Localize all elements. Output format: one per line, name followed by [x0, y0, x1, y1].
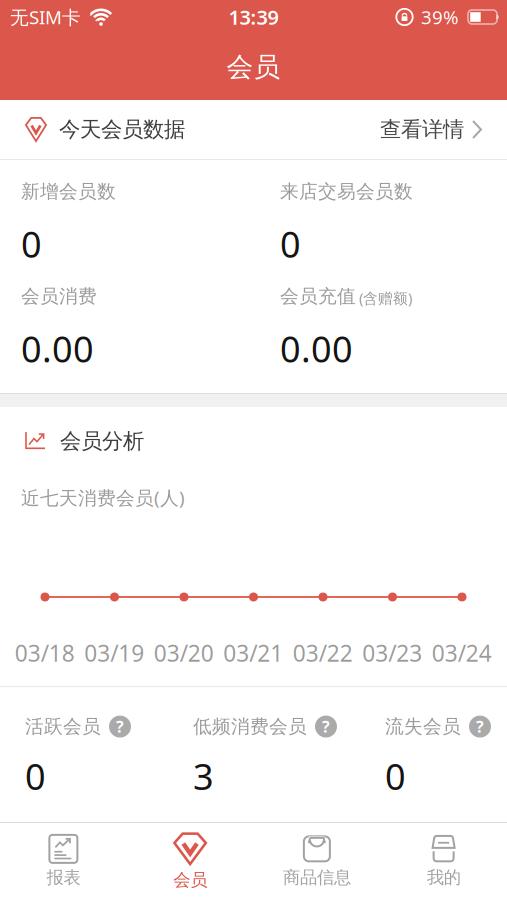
staticText: 会员 [173, 869, 207, 891]
staticText: 13:39 [228, 4, 278, 30]
staticText: 03/18 [15, 638, 75, 668]
staticText: (含赠额) [359, 288, 412, 308]
staticText: 我的 [427, 867, 461, 888]
staticText: 03/24 [432, 638, 492, 668]
button[interactable]: 我的 [380, 823, 507, 900]
staticText: 活跃会员 [25, 715, 101, 738]
staticText: 会员消费 [21, 285, 97, 308]
staticText: 会员 [226, 51, 280, 83]
staticText: 无SIM卡 [10, 5, 81, 29]
staticText: 0 [21, 220, 42, 268]
staticText: 流失会员 [385, 715, 461, 738]
staticText: 03/22 [293, 638, 353, 668]
staticText: 0 [25, 752, 46, 800]
staticText: 39% [421, 5, 459, 29]
staticText: 新增会员数 [21, 180, 116, 203]
staticText: ? [116, 716, 124, 737]
staticText: 3 [193, 752, 214, 800]
staticText: 会员分析 [60, 428, 144, 454]
staticText: 03/21 [223, 638, 283, 668]
button[interactable]: 帮助 [315, 716, 337, 738]
button[interactable]: 商品信息 [253, 823, 380, 900]
staticText: 商品信息 [283, 867, 351, 888]
staticText: ? [322, 716, 330, 737]
button[interactable]: 查看详情 [380, 116, 483, 143]
staticText: 近七天消费会员(人) [21, 485, 185, 510]
staticText: ? [476, 716, 484, 737]
staticText: 报表 [46, 867, 80, 888]
staticText: 会员充值 [280, 285, 356, 308]
staticText: 0.00 [21, 325, 94, 372]
staticText: 来店交易会员数 [280, 180, 413, 203]
staticText: 0.00 [280, 325, 353, 372]
button[interactable]: 帮助 [109, 716, 131, 738]
button[interactable]: 帮助 [469, 716, 491, 738]
staticText: 查看详情 [380, 116, 464, 143]
button[interactable]: 报表 [0, 823, 127, 900]
staticText: 今天会员数据 [59, 116, 185, 143]
staticText: 03/20 [154, 638, 214, 668]
staticText: 低频消费会员 [193, 715, 307, 738]
staticText: 03/23 [362, 638, 422, 668]
button[interactable]: 会员 [127, 823, 254, 900]
staticText: 03/19 [84, 638, 144, 668]
staticText: 0 [385, 752, 406, 800]
staticText: 0 [280, 220, 301, 268]
